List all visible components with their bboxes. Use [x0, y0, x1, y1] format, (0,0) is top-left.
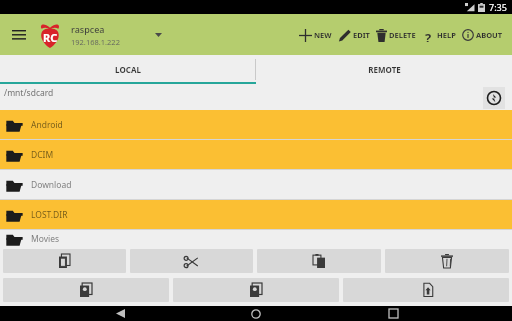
button[interactable]: Recent apps	[376, 306, 410, 321]
button[interactable]: Movies	[0, 230, 512, 247]
staticText: NEW	[314, 30, 332, 40]
button[interactable]: NEW	[296, 20, 335, 50]
button[interactable]: LOST.DIR	[0, 200, 512, 230]
staticText: raspcea	[71, 23, 105, 35]
button[interactable]: ABOUT	[459, 20, 506, 50]
button[interactable]: Refresh	[483, 87, 505, 109]
button[interactable]: Android	[0, 110, 512, 140]
staticText: Movies	[31, 233, 60, 245]
staticText: DELETE	[389, 30, 416, 40]
staticText: /mnt/sdcard	[4, 87, 54, 99]
button[interactable]: DELETE	[373, 20, 419, 50]
button[interactable]: New file	[3, 278, 169, 302]
button[interactable]: LOCAL	[0, 55, 255, 84]
button[interactable]: Back	[103, 306, 137, 321]
button[interactable]: REMOTE	[256, 55, 512, 84]
button[interactable]: Cut	[130, 249, 253, 273]
button[interactable]: Delete	[385, 249, 509, 273]
staticText: LOST.DIR	[31, 209, 68, 221]
staticText: 7:35	[489, 1, 507, 13]
staticText: 192.168.1.222	[71, 37, 120, 47]
staticText: RC	[43, 30, 58, 45]
button[interactable]: Download	[0, 170, 512, 200]
staticText: REMOTE	[368, 64, 401, 75]
staticText: ?	[425, 29, 432, 42]
staticText: DCIM	[31, 149, 54, 161]
button[interactable]: Paste	[257, 249, 381, 273]
staticText: LOCAL	[115, 64, 141, 75]
staticText: HELP	[437, 30, 456, 40]
button[interactable]: App logo	[35, 20, 65, 50]
button[interactable]: EDIT	[335, 20, 373, 50]
staticText: ABOUT	[476, 30, 503, 40]
button[interactable]: ?	[419, 20, 459, 50]
button[interactable]: Copy	[3, 249, 126, 273]
staticText: Android	[31, 119, 63, 131]
staticText: EDIT	[353, 30, 370, 40]
button[interactable]: Home	[239, 306, 273, 321]
button[interactable]: Menu	[6, 22, 32, 48]
staticText: Download	[31, 179, 72, 191]
button[interactable]: DCIM	[0, 140, 512, 170]
button[interactable]: Select server	[149, 26, 167, 44]
button[interactable]: New folder	[173, 278, 339, 302]
button[interactable]: Upload	[343, 278, 509, 302]
